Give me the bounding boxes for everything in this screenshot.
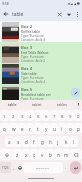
staticText: Side table	[21, 71, 37, 76]
button[interactable]: d	[22, 136, 30, 147]
staticText: Location: Aisle 4	[21, 80, 46, 84]
staticText: table	[12, 11, 54, 18]
staticText: a	[8, 139, 11, 145]
staticText: g	[41, 139, 44, 145]
button[interactable]: Space	[23, 162, 63, 173]
button[interactable]: tables	[49, 100, 74, 109]
button[interactable]: Back	[0, 7, 12, 21]
staticText: v	[41, 152, 44, 158]
staticText: t	[37, 126, 39, 132]
button[interactable]: ,	[11, 161, 17, 174]
button[interactable]: Box 3	[0, 42, 82, 63]
staticText: d	[25, 139, 28, 145]
button[interactable]: j	[54, 136, 62, 147]
button[interactable]: Emoji	[17, 161, 23, 174]
staticText: m	[64, 152, 69, 158]
button[interactable]: g	[38, 136, 46, 147]
button[interactable]: u	[50, 123, 58, 134]
staticText: q	[3, 126, 6, 132]
button[interactable]: h	[46, 136, 54, 147]
button[interactable]: 2	[9, 110, 18, 121]
staticText: Type: Furniture	[21, 76, 44, 80]
button[interactable]: r	[26, 123, 34, 134]
button[interactable]: 3	[18, 110, 26, 121]
button[interactable]: z	[13, 149, 22, 160]
staticText: Type: Furniture	[21, 55, 44, 59]
button[interactable]: More options	[73, 10, 82, 19]
button[interactable]: y	[42, 123, 50, 134]
staticText: .	[65, 165, 67, 171]
button[interactable]: Box 2	[0, 21, 82, 42]
staticText: j	[57, 139, 59, 145]
button[interactable]: tablet	[24, 100, 49, 109]
staticText: 6	[45, 113, 48, 119]
staticText: ?123	[2, 166, 9, 170]
button[interactable]: Clear	[54, 9, 64, 19]
staticText: Box 3	[21, 44, 33, 50]
staticText: Type: Furniture	[21, 97, 44, 100]
button[interactable]: table	[0, 100, 24, 109]
button[interactable]: .	[63, 161, 69, 174]
staticText: s	[17, 139, 20, 145]
staticText: e	[21, 126, 24, 132]
button[interactable]: a	[5, 136, 14, 147]
staticText: 1	[3, 113, 6, 119]
button[interactable]: Enter	[70, 161, 81, 174]
button[interactable]: 8	[58, 110, 66, 121]
staticText: f	[33, 139, 35, 145]
staticText: 5	[37, 113, 40, 119]
staticText: h	[49, 139, 52, 145]
staticText: y	[45, 126, 48, 132]
button[interactable]: 1	[0, 110, 9, 121]
button[interactable]: o	[66, 123, 74, 134]
button[interactable]: Voice input	[74, 100, 82, 109]
button[interactable]: f	[30, 136, 38, 147]
button[interactable]: b	[46, 149, 54, 160]
staticText: 2	[12, 113, 15, 119]
button[interactable]: 5	[34, 110, 42, 121]
button[interactable]: 6	[42, 110, 50, 121]
button[interactable]: 9	[66, 110, 74, 121]
staticText: ,	[13, 165, 15, 171]
button[interactable]: Backspace	[70, 149, 82, 160]
staticText: End Table Walnut	[21, 50, 49, 55]
button[interactable]: k	[62, 136, 70, 147]
button[interactable]: Voice search	[64, 10, 73, 19]
button[interactable]: Box 5	[0, 84, 82, 100]
button[interactable]: Edit	[71, 88, 80, 97]
staticText: o	[69, 126, 72, 132]
staticText: 7	[53, 113, 56, 119]
button[interactable]: l	[70, 136, 78, 147]
staticText: i	[61, 126, 63, 132]
staticText: r	[29, 126, 31, 132]
staticText: Box 4	[21, 65, 33, 71]
button[interactable]: 0	[74, 110, 82, 121]
staticText: 9	[69, 113, 72, 119]
staticText: Breakfast table set	[21, 92, 51, 97]
button[interactable]: s	[14, 136, 22, 147]
staticText: k	[65, 139, 68, 145]
button[interactable]: ?123	[0, 162, 11, 173]
button[interactable]: q	[0, 123, 9, 134]
staticText: c	[33, 152, 36, 158]
button[interactable]: 7	[50, 110, 58, 121]
button[interactable]: i	[58, 123, 66, 134]
staticText: Location: Aisle 3	[21, 38, 46, 42]
button[interactable]: m	[62, 149, 70, 160]
staticText: 9:58	[2, 1, 9, 6]
staticText: u	[53, 126, 56, 132]
staticText: Koffee table	[21, 29, 41, 34]
button[interactable]: c	[30, 149, 38, 160]
button[interactable]: t	[34, 123, 42, 134]
button[interactable]: Shift	[0, 149, 13, 160]
button[interactable]: p	[74, 123, 82, 134]
button[interactable]: 4	[26, 110, 34, 121]
button[interactable]: Box 4	[0, 63, 82, 84]
button[interactable]: e	[18, 123, 26, 134]
button[interactable]: x	[22, 149, 30, 160]
button[interactable]: v	[38, 149, 46, 160]
button[interactable]: n	[54, 149, 62, 160]
staticText: tables	[57, 102, 67, 107]
staticText: 8	[61, 113, 64, 119]
button[interactable]: w	[9, 123, 18, 134]
